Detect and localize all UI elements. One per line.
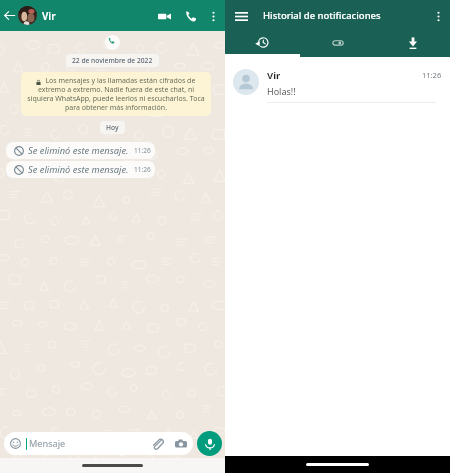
staticText: Se eliminó este mensaje.	[28, 144, 129, 157]
staticText: 22 de noviembre de 2022	[72, 56, 153, 65]
button[interactable]: Vir	[225, 57, 450, 103]
button[interactable]: Se eliminó este mensaje.	[6, 142, 155, 159]
staticText: Vir	[42, 9, 56, 23]
button[interactable]: Hoy	[100, 121, 125, 134]
button[interactable]: Attach	[151, 437, 164, 450]
button[interactable]: Los mensajes y las llamadas están cifrad…	[21, 72, 211, 116]
button[interactable]: Call	[180, 5, 202, 27]
staticText: Se eliminó este mensaje.	[28, 163, 129, 176]
staticText: Vir	[267, 69, 281, 82]
button[interactable]: 22 de noviembre de 2022	[66, 54, 159, 67]
button[interactable]: Voice message	[197, 431, 222, 456]
staticText: Mensaje	[29, 437, 66, 450]
staticText: Holas!!	[267, 85, 296, 97]
button[interactable]: Menu	[231, 6, 251, 26]
button[interactable]: More options	[202, 5, 224, 27]
button[interactable]: Conversations	[300, 31, 375, 57]
staticText: 11:26	[422, 70, 442, 80]
button[interactable]: Camera	[175, 438, 187, 450]
staticText: Los mensajes y las llamadas están cifrad…	[25, 76, 207, 112]
button[interactable]: Video call	[153, 5, 175, 27]
staticText: Historial de notificaciones	[263, 9, 381, 22]
button[interactable]: History	[225, 31, 300, 57]
button[interactable]: Downloads	[375, 31, 450, 57]
button[interactable]: More options	[427, 5, 449, 27]
button[interactable]: Se eliminó este mensaje.	[6, 161, 155, 178]
staticText: 11:26	[134, 146, 151, 155]
button[interactable]: Back	[2, 8, 17, 23]
button[interactable]: Mensaje	[4, 432, 193, 455]
staticText: Hoy	[106, 123, 119, 132]
staticText: 11:26	[134, 165, 151, 174]
